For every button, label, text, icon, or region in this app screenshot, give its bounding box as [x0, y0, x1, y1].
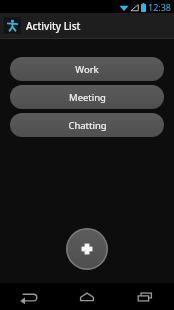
button[interactable]: Back	[0, 283, 58, 310]
button[interactable]: Meeting	[10, 85, 164, 109]
button[interactable]: Work	[10, 57, 164, 81]
staticText: 12:38	[148, 1, 172, 13]
staticText: Activity List	[26, 19, 81, 33]
button[interactable]: Chatting	[10, 113, 164, 137]
button[interactable]: Home	[58, 283, 116, 310]
staticText: Meeting	[69, 91, 106, 104]
button[interactable]: Recents	[116, 283, 174, 310]
staticText: Work	[75, 63, 99, 76]
other: App icon	[4, 17, 21, 34]
button[interactable]: Add activity	[66, 228, 108, 270]
staticText: Chatting	[68, 119, 107, 132]
